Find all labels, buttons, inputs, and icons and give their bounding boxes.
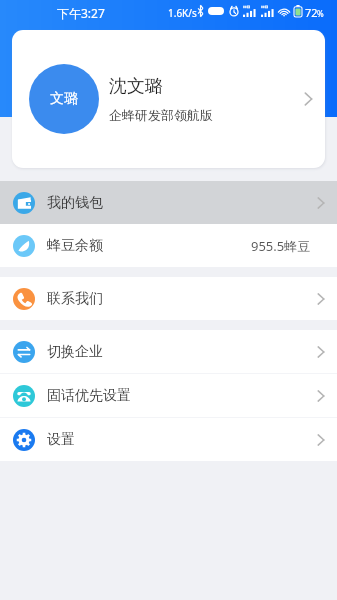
button[interactable]: 固话优先设置 — [0, 374, 337, 417]
staticText: 955.5蜂豆 — [251, 237, 311, 255]
staticText: 文璐 — [50, 90, 78, 108]
staticText: 1.6K/s — [168, 6, 197, 20]
staticText: 切换企业 — [47, 343, 103, 361]
staticText: 沈文璐 — [109, 75, 163, 98]
staticText: 下午3:27 — [57, 5, 105, 21]
staticText: 蜂豆余额 — [47, 237, 103, 255]
button[interactable]: 切换企业 — [0, 330, 337, 373]
button[interactable]: 设置 — [0, 418, 337, 461]
button[interactable]: 文璐 — [12, 30, 325, 168]
staticText: 我的钱包 — [47, 194, 103, 212]
staticText: 72 — [305, 5, 318, 20]
staticText: % — [317, 8, 324, 19]
button[interactable]: 蜂豆余额 — [0, 224, 337, 267]
staticText: 企蜂研发部领航版 — [109, 107, 213, 123]
button[interactable]: 我的钱包 — [0, 181, 337, 224]
staticText: 设置 — [47, 431, 75, 449]
staticText: 固话优先设置 — [47, 387, 131, 405]
staticText: 联系我们 — [47, 290, 103, 308]
button[interactable]: 联系我们 — [0, 277, 337, 320]
